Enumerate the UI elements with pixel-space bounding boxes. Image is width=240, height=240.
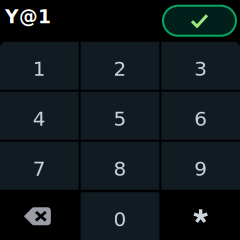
button[interactable]: 2 — [81, 42, 159, 90]
staticText: 8 — [113, 157, 126, 180]
staticText: Y@1 — [5, 6, 51, 28]
button[interactable]: Star — [161, 192, 240, 240]
button[interactable]: Confirm — [163, 6, 236, 36]
button[interactable]: 5 — [81, 92, 159, 140]
staticText: 6 — [194, 107, 207, 130]
button[interactable]: 7 — [0, 142, 79, 190]
button[interactable]: 0 — [81, 192, 159, 240]
button[interactable]: 3 — [161, 42, 240, 90]
button[interactable]: Delete — [0, 192, 79, 240]
button[interactable]: 4 — [0, 92, 79, 140]
staticText: 5 — [113, 107, 126, 130]
staticText: 1 — [33, 57, 46, 80]
button[interactable]: 8 — [81, 142, 159, 190]
staticText: 0 — [113, 208, 126, 231]
staticText: 3 — [194, 57, 207, 80]
button[interactable]: 1 — [0, 42, 79, 90]
staticText: 4 — [33, 107, 46, 130]
staticText: 7 — [33, 157, 46, 180]
staticText: 9 — [194, 157, 207, 180]
button[interactable]: 9 — [161, 142, 240, 190]
staticText: 2 — [113, 57, 126, 80]
button[interactable]: 6 — [161, 92, 240, 140]
